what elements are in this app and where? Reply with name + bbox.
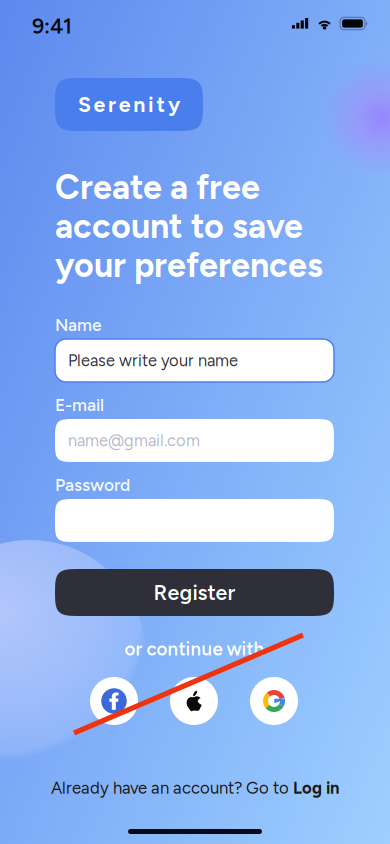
- button[interactable]: Continue with Apple: [170, 677, 218, 725]
- button[interactable]: Serenity: [55, 78, 203, 131]
- button[interactable]: Continue with Facebook: [90, 677, 138, 725]
- staticText: Create a free: [55, 167, 260, 207]
- staticText: Serenity: [78, 92, 180, 117]
- staticText: Password: [55, 475, 130, 495]
- staticText: Register: [153, 580, 235, 605]
- staticText: Please write your name: [68, 351, 238, 370]
- button[interactable]: Continue with Google: [250, 677, 298, 725]
- staticText: your preferences: [55, 245, 323, 285]
- button[interactable]: Already have an account? Go to Log in: [0, 779, 390, 797]
- staticText: 9:41: [32, 13, 72, 39]
- button[interactable]: Please write your name: [55, 339, 334, 382]
- staticText: Name: [55, 315, 102, 335]
- button[interactable]: Register: [55, 569, 334, 616]
- staticText: name@gmail.com: [68, 431, 200, 450]
- staticText: Already have an account? Go to Log in: [51, 778, 339, 798]
- button[interactable]: name@gmail.com: [55, 419, 334, 462]
- staticText: account to save: [55, 206, 303, 246]
- staticText: E-mail: [55, 395, 104, 415]
- staticText: or continue with: [124, 638, 264, 660]
- button[interactable]: [55, 499, 334, 542]
